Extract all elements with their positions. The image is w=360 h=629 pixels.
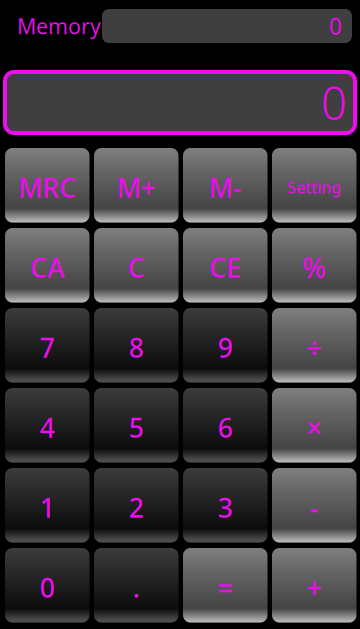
staticText: =: [217, 569, 233, 606]
button[interactable]: 5: [94, 388, 178, 463]
staticText: ÷: [306, 329, 322, 366]
button[interactable]: 1: [5, 468, 89, 543]
button[interactable]: CE: [183, 228, 267, 303]
staticText: C: [128, 250, 145, 285]
button[interactable]: 9: [183, 308, 267, 383]
staticText: 5: [129, 410, 144, 445]
staticText: 0: [321, 72, 347, 133]
button[interactable]: MRC: [5, 148, 89, 223]
staticText: Setting: [287, 177, 341, 198]
button[interactable]: M+: [94, 148, 178, 223]
staticText: 9: [218, 330, 233, 365]
button[interactable]: 3: [183, 468, 267, 543]
staticText: -: [310, 489, 319, 526]
staticText: M-: [209, 170, 242, 205]
staticText: 8: [129, 330, 144, 365]
button[interactable]: Setting: [272, 148, 356, 223]
button[interactable]: CA: [5, 228, 89, 303]
staticText: 6: [218, 410, 233, 445]
button[interactable]: C: [94, 228, 178, 303]
button[interactable]: 0: [5, 548, 89, 623]
button[interactable]: 7: [5, 308, 89, 383]
button[interactable]: .: [94, 548, 178, 623]
button[interactable]: 8: [94, 308, 178, 383]
button[interactable]: -: [272, 468, 356, 543]
staticText: 0: [40, 570, 55, 605]
staticText: Memory: [17, 12, 101, 40]
staticText: %: [302, 249, 326, 286]
button[interactable]: 4: [5, 388, 89, 463]
staticText: 7: [40, 330, 55, 365]
button[interactable]: M-: [183, 148, 267, 223]
staticText: 0: [329, 11, 342, 41]
staticText: .: [133, 570, 140, 605]
button[interactable]: 6: [183, 388, 267, 463]
button[interactable]: %: [272, 228, 356, 303]
staticText: MRC: [18, 170, 76, 205]
button[interactable]: ÷: [272, 308, 356, 383]
staticText: +: [306, 569, 322, 606]
staticText: 4: [40, 410, 55, 445]
staticText: 3: [218, 490, 233, 525]
button[interactable]: ×: [272, 388, 356, 463]
staticText: CE: [209, 250, 241, 285]
button[interactable]: +: [272, 548, 356, 623]
staticText: 1: [40, 490, 55, 525]
staticText: CA: [30, 250, 64, 285]
staticText: M+: [117, 170, 156, 205]
button[interactable]: 2: [94, 468, 178, 543]
button[interactable]: =: [183, 548, 267, 623]
staticText: ×: [306, 409, 322, 446]
staticText: 2: [129, 490, 144, 525]
